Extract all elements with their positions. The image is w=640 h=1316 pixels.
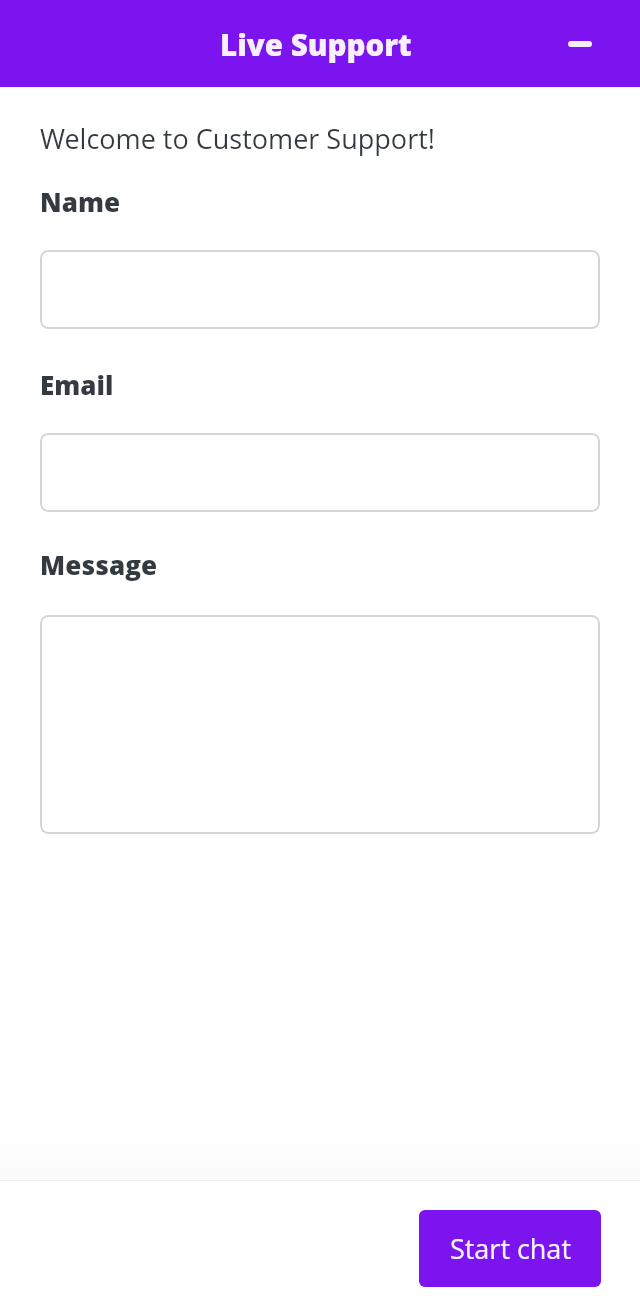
button[interactable]: Start chat <box>419 1210 601 1287</box>
staticText: Message <box>40 547 157 582</box>
staticText: Name <box>40 184 120 219</box>
staticText: Start chat <box>450 1230 571 1267</box>
staticText: Email <box>40 367 114 402</box>
staticText: Live Support <box>220 24 412 64</box>
button[interactable]: Name input field <box>40 250 600 329</box>
button[interactable]: Message input field <box>40 615 600 834</box>
staticText: Welcome to Customer Support! <box>40 120 435 157</box>
button[interactable]: Minimize chat window <box>552 16 608 72</box>
button[interactable]: Email input field <box>40 433 600 512</box>
